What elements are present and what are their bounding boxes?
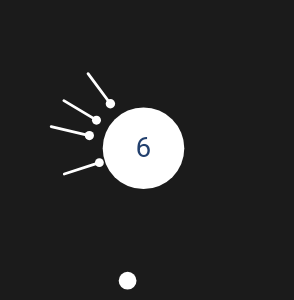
button[interactable]: Tap to shoot a pin	[0, 0, 294, 300]
